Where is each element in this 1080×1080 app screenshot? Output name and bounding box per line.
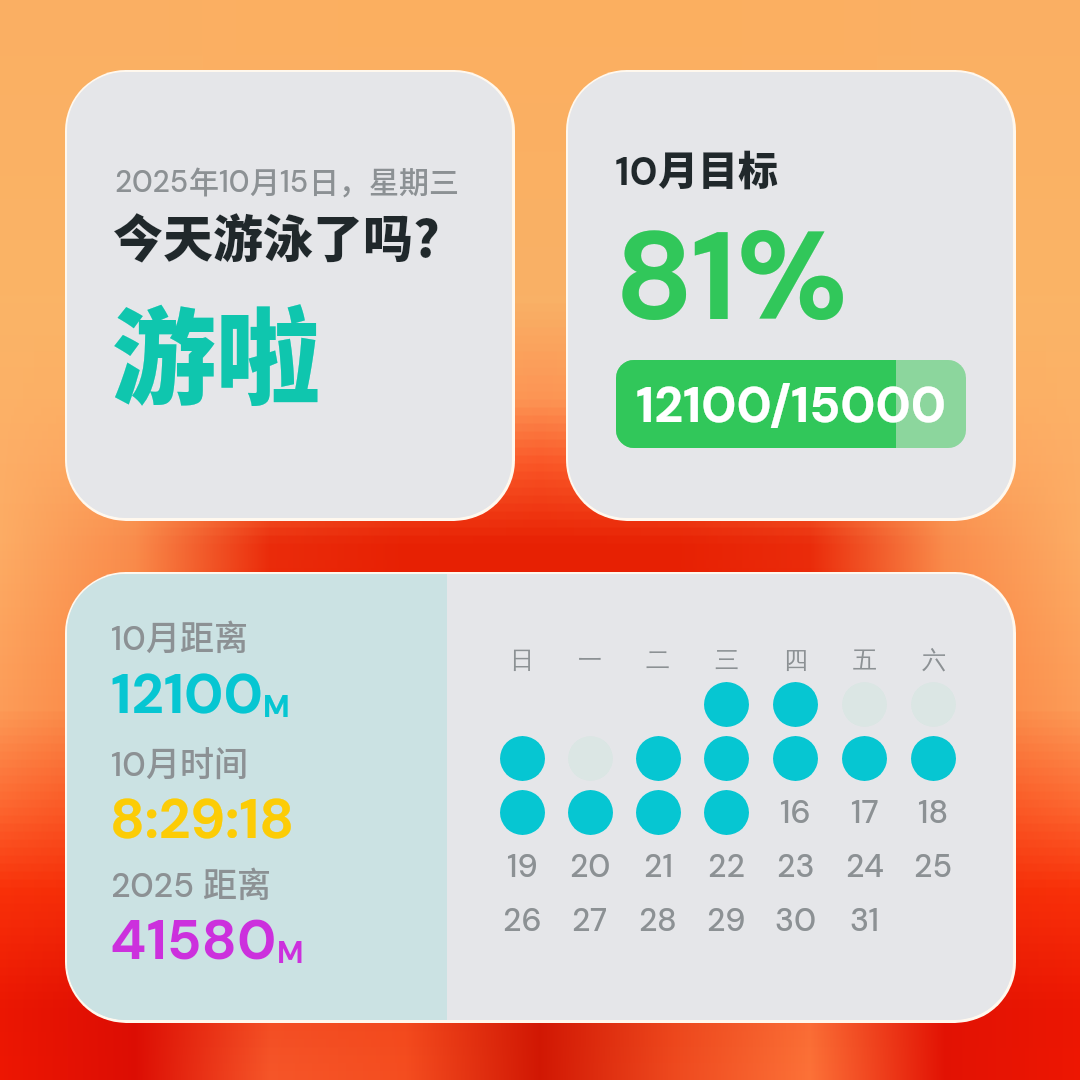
staticText: 26 [503,899,542,941]
staticText: 25 [914,845,953,887]
staticText: 20 [570,845,611,887]
staticText: 五 [853,645,877,675]
button[interactable]: 2025 [67,72,512,518]
staticText: 10 [111,616,146,660]
staticText: 10 [111,742,146,786]
staticText: 22 [708,845,745,887]
staticText: 游啦 [112,275,321,426]
staticText: 三 [715,645,739,675]
staticText: 30 [775,899,817,941]
staticText: 月距离 [146,611,248,660]
staticText: 12100/15000 [636,372,946,437]
staticText: 27 [572,899,608,941]
staticText: 月 [250,158,280,201]
staticText: 15 [280,162,309,201]
staticText: 距离 [203,858,271,907]
staticText: 日 [510,645,534,675]
staticText: 10 [615,145,658,197]
staticText: 17 [851,791,879,833]
staticText: 8:29:18 [110,783,295,855]
staticText: M [263,687,290,726]
button[interactable]: 12100/15000 [616,360,966,448]
staticText: 月目标 [658,139,778,197]
staticText: 四 [784,645,808,675]
staticText: 21 [644,845,673,887]
staticText: 23 [777,845,815,887]
staticText: 日，星期三 [309,158,459,201]
staticText: 六 [922,645,946,675]
staticText: 一 [578,645,602,675]
staticText: 12100 [111,657,263,730]
staticText: 2025 [111,863,203,907]
staticText: 18 [918,791,949,833]
staticText: 今天游泳了吗? [113,199,440,271]
staticText: 19 [507,845,538,887]
staticText: 16 [780,791,811,833]
staticText: M [277,933,304,972]
button[interactable]: 10 [568,72,1013,518]
staticText: 月时间 [146,737,248,786]
staticText: 31 [850,899,880,941]
staticText: 81% [615,196,848,357]
staticText: 41580 [110,903,277,976]
staticText: 2025 [115,162,189,201]
staticText: 年 [189,158,219,201]
staticText: 24 [846,845,884,887]
staticText: 二 [646,645,670,675]
button[interactable]: 10 [67,574,1013,1020]
staticText: 28 [639,899,677,941]
staticText: 29 [707,899,746,941]
staticText: 10 [219,162,250,201]
